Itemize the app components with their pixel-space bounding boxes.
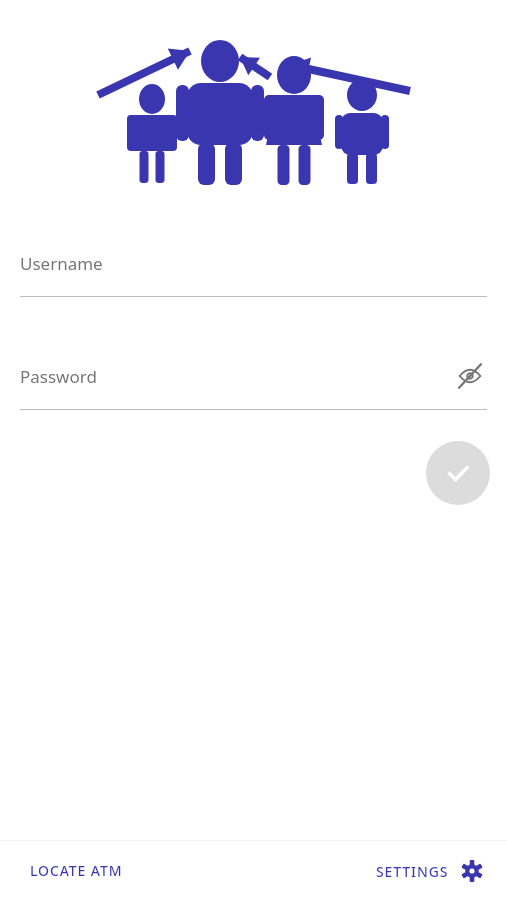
staticText: Username	[20, 252, 487, 275]
button[interactable]: Username	[20, 242, 487, 284]
button[interactable]: SETTINGS	[366, 852, 493, 890]
staticText: SETTINGS	[376, 862, 449, 881]
button[interactable]: LOCATE ATM	[16, 853, 137, 888]
button[interactable]: Password	[20, 355, 487, 397]
button[interactable]: Sign in	[426, 441, 490, 505]
staticText: Password	[20, 365, 453, 388]
staticText: LOCATE ATM	[30, 861, 123, 880]
button[interactable]: Show password	[453, 359, 487, 393]
